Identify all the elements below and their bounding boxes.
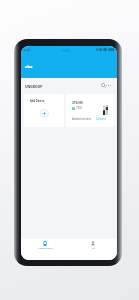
- staticText: alias: [25, 65, 33, 69]
- staticText: 19:36: [61, 48, 70, 53]
- button[interactable]: Add Device: [24, 94, 64, 127]
- button[interactable]: Me: [69, 239, 117, 260]
- button[interactable]: More options: [104, 81, 113, 90]
- staticText: 74%: [76, 106, 82, 110]
- button[interactable]: Search: [99, 81, 108, 90]
- staticText: Nearest Device: [38, 247, 53, 250]
- staticText: Me: [92, 247, 95, 250]
- staticText: Administrator: [72, 117, 92, 121]
- staticText: 370-H5: [72, 101, 83, 105]
- button[interactable]: 370-H5: [66, 94, 115, 127]
- button[interactable]: Nearest Device: [21, 239, 69, 260]
- staticText: Add Device: [30, 99, 45, 103]
- staticText: Unbind: [96, 117, 106, 121]
- staticText: UNGROUP: [25, 84, 43, 89]
